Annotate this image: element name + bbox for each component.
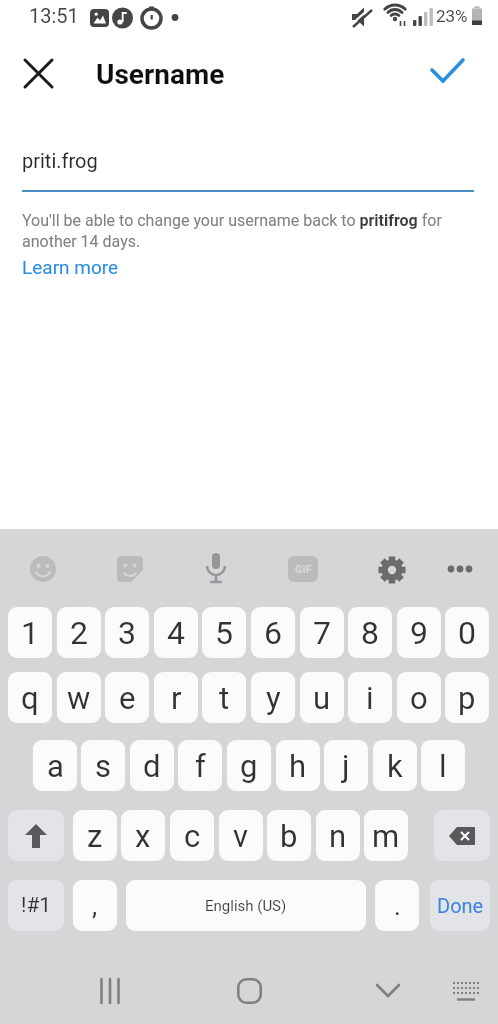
staticText: s	[95, 748, 111, 784]
button[interactable]: !#1	[8, 880, 64, 931]
button[interactable]: i	[348, 672, 392, 723]
staticText: You'll be able to change your username b…	[22, 211, 442, 251]
staticText: b	[280, 818, 298, 854]
staticText: 23%	[436, 6, 468, 26]
staticText: h	[289, 748, 307, 784]
button[interactable]: English (US)	[126, 880, 366, 931]
button[interactable]: v	[219, 810, 263, 861]
staticText: .	[394, 891, 401, 921]
button[interactable]: k	[373, 740, 417, 791]
staticText: 2	[70, 614, 88, 652]
staticText: a	[47, 748, 64, 784]
button[interactable]	[12, 47, 64, 99]
button[interactable]	[448, 975, 484, 1009]
staticText: 7	[313, 614, 331, 652]
staticText: k	[387, 748, 403, 784]
staticText: u	[313, 680, 331, 716]
staticText: n	[329, 818, 347, 854]
button[interactable]: u	[300, 672, 344, 723]
button[interactable]: GIF	[286, 553, 320, 585]
staticText: l	[439, 748, 447, 784]
button[interactable]	[366, 969, 410, 1013]
button[interactable]: 2	[57, 607, 101, 658]
button[interactable]	[25, 551, 61, 587]
button[interactable]	[434, 810, 490, 861]
staticText: 13:51	[29, 4, 79, 27]
button[interactable]: b	[267, 810, 311, 861]
staticText: j	[342, 748, 350, 784]
staticText: e	[119, 680, 136, 716]
button[interactable]	[227, 969, 271, 1013]
button[interactable]: e	[105, 672, 149, 723]
staticText: f	[195, 748, 206, 784]
staticText: English (US)	[205, 897, 287, 915]
button[interactable]: Learn more	[22, 256, 119, 278]
button[interactable]	[373, 551, 411, 589]
button[interactable]: s	[81, 740, 125, 791]
button[interactable]: l	[421, 740, 465, 791]
button[interactable]	[199, 549, 233, 589]
button[interactable]: h	[276, 740, 320, 791]
staticText: o	[410, 680, 428, 716]
staticText: q	[21, 680, 39, 716]
button[interactable]: .	[375, 880, 419, 931]
button[interactable]	[88, 969, 132, 1013]
button[interactable]: ,	[73, 880, 117, 931]
button[interactable]: q	[8, 672, 52, 723]
staticText: 4	[167, 614, 185, 652]
staticText: 9	[410, 614, 428, 652]
staticText: x	[135, 818, 151, 854]
staticText: c	[184, 818, 201, 854]
staticText: p	[458, 680, 476, 716]
button[interactable]: z	[73, 810, 117, 861]
staticText: priti.frog	[22, 149, 98, 172]
staticText: r	[171, 680, 182, 716]
button[interactable]: w	[57, 672, 101, 723]
button[interactable]: 3	[105, 607, 149, 658]
button[interactable]: 0	[445, 607, 489, 658]
button[interactable]: n	[316, 810, 360, 861]
button[interactable]: a	[33, 740, 77, 791]
button[interactable]: 8	[348, 607, 392, 658]
staticText: t	[219, 680, 230, 716]
staticText: Username	[96, 58, 225, 91]
staticText: 3	[118, 614, 136, 652]
button[interactable]	[420, 47, 476, 95]
staticText: z	[87, 818, 103, 854]
button[interactable]: m	[364, 810, 408, 861]
button[interactable]: 7	[300, 607, 344, 658]
staticText: g	[240, 748, 258, 784]
button[interactable]: r	[154, 672, 198, 723]
button[interactable]: p	[445, 672, 489, 723]
staticText: Done	[437, 894, 484, 917]
staticText: GIF	[295, 563, 312, 576]
staticText: ,	[92, 891, 98, 921]
button[interactable]: t	[202, 672, 246, 723]
button[interactable]	[443, 555, 477, 583]
staticText: 1	[21, 614, 39, 652]
staticText: 6	[264, 614, 282, 652]
staticText: !#1	[21, 893, 52, 918]
button[interactable]: c	[170, 810, 214, 861]
button[interactable]: 9	[397, 607, 441, 658]
button[interactable]: x	[121, 810, 165, 861]
button[interactable]: 4	[154, 607, 198, 658]
button[interactable]: d	[130, 740, 174, 791]
button[interactable]: f	[178, 740, 222, 791]
staticText: y	[266, 680, 281, 716]
button[interactable]	[8, 810, 64, 861]
staticText: m	[372, 818, 400, 854]
button[interactable]: 6	[251, 607, 295, 658]
staticText: v	[233, 818, 249, 854]
button[interactable]: 5	[202, 607, 246, 658]
button[interactable]: y	[251, 672, 295, 723]
button[interactable]: Done	[430, 880, 490, 931]
button[interactable]: j	[324, 740, 368, 791]
button[interactable]: 1	[8, 607, 52, 658]
staticText: w	[67, 680, 91, 716]
staticText: d	[143, 748, 161, 784]
button[interactable]	[112, 551, 148, 587]
button[interactable]: o	[397, 672, 441, 723]
staticText: i	[366, 680, 374, 716]
button[interactable]: g	[227, 740, 271, 791]
